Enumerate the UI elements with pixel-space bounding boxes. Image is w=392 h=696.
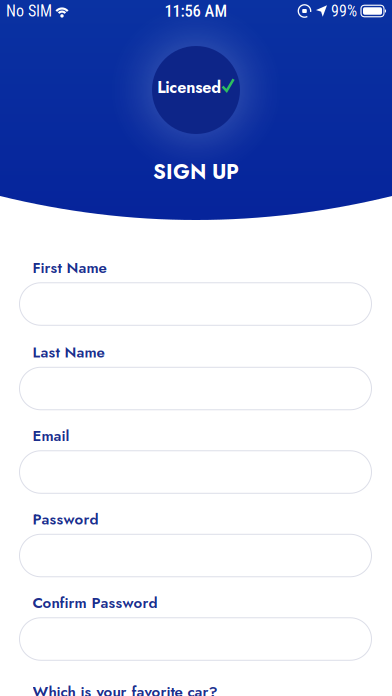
staticText: Password bbox=[32, 508, 98, 530]
staticText: Which is your favorite car? bbox=[32, 681, 217, 696]
staticText: 11:56 AM bbox=[164, 1, 227, 21]
staticText: First Name bbox=[32, 257, 106, 279]
staticText: Last Name bbox=[32, 341, 104, 363]
staticText: Confirm Password bbox=[32, 592, 157, 614]
staticText: Email bbox=[32, 425, 69, 447]
button[interactable]: Last Name bbox=[19, 367, 371, 410]
button[interactable]: Password bbox=[19, 534, 371, 577]
staticText: No SIM bbox=[6, 2, 52, 20]
staticText: SIGN UP bbox=[153, 157, 239, 187]
staticText: 99% bbox=[331, 2, 357, 20]
staticText: Licensed bbox=[157, 76, 221, 99]
